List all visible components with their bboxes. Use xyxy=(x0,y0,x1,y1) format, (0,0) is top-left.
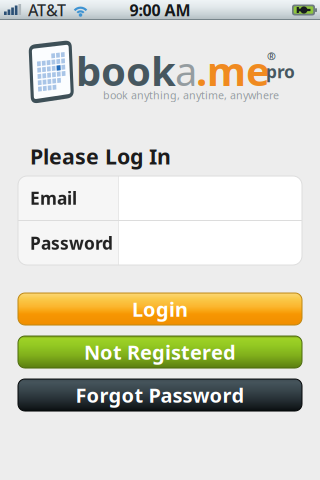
button[interactable]: Login xyxy=(18,293,302,325)
staticText: a xyxy=(175,44,197,97)
staticText: Email xyxy=(30,186,77,209)
staticText: Password xyxy=(30,231,113,254)
staticText: ® xyxy=(267,49,276,63)
staticText: .me xyxy=(196,44,270,97)
button[interactable]: Forgot Password xyxy=(18,379,302,411)
staticText: book xyxy=(76,44,176,97)
staticText: 9:00 AM xyxy=(129,0,190,21)
staticText: Login xyxy=(132,296,188,322)
staticText: book anything, anytime, anywhere xyxy=(103,88,279,102)
staticText: Please Log In xyxy=(30,142,171,170)
staticText: AT&T xyxy=(28,0,66,21)
button[interactable]: Email xyxy=(18,176,302,220)
staticText: Not Registered xyxy=(84,339,236,365)
staticText: Forgot Password xyxy=(75,382,244,408)
staticText: pro xyxy=(266,60,295,83)
button[interactable]: Password xyxy=(18,221,302,265)
button[interactable]: Not Registered xyxy=(18,336,302,368)
